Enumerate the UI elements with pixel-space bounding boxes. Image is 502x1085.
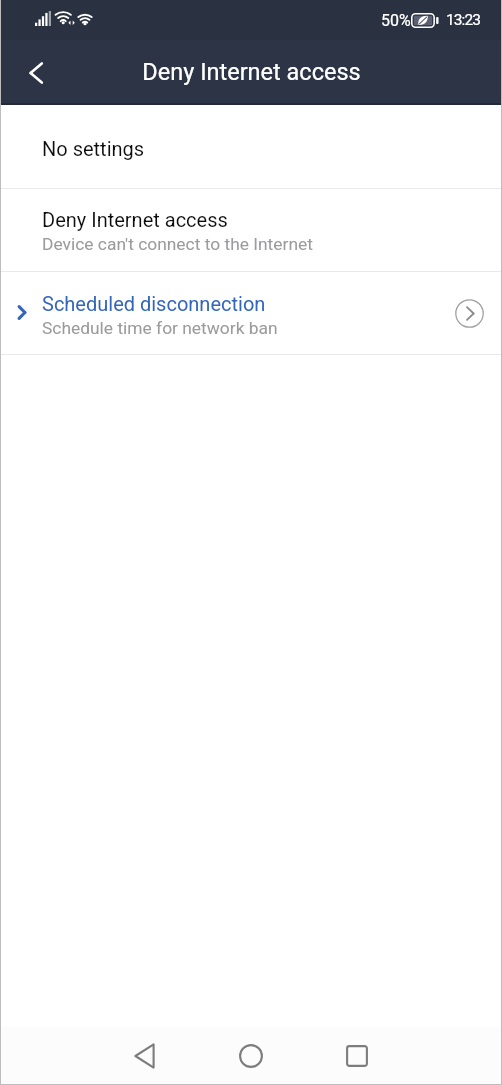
button[interactable]: Scheduled disconnection	[0, 272, 502, 354]
staticText: Scheduled disconnection	[42, 292, 266, 315]
staticText: Schedule time for network ban	[42, 318, 278, 338]
button[interactable]: Recent apps	[333, 1032, 381, 1080]
staticText: No settings	[42, 137, 145, 160]
button[interactable]: Back	[17, 55, 53, 91]
staticText: Deny Internet access	[42, 208, 228, 231]
button[interactable]: Back	[120, 1032, 168, 1080]
staticText: Deny Internet access	[142, 58, 361, 86]
button[interactable]: Home	[227, 1032, 275, 1080]
staticText: 50%	[381, 11, 411, 30]
button[interactable]: Deny Internet access	[0, 189, 502, 271]
staticText: 13:23	[446, 11, 481, 29]
button[interactable]: No settings	[0, 105, 502, 188]
staticText: Device can't connect to the Internet	[42, 234, 313, 254]
button[interactable]: Open scheduled disconnection	[451, 295, 487, 331]
